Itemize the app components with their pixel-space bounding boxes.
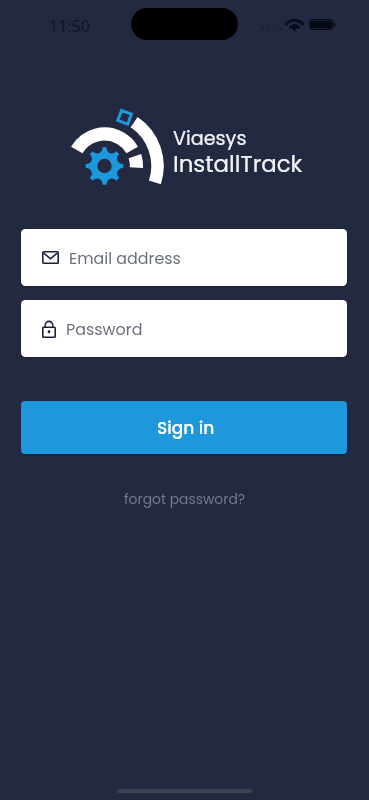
button[interactable]: Email address — [21, 229, 347, 286]
staticText: 11:50 — [49, 15, 90, 37]
other: Battery — [309, 19, 337, 30]
staticText: Viaesys — [173, 125, 247, 152]
button[interactable]: Sign in — [21, 401, 347, 454]
other: Wi-Fi — [286, 18, 303, 31]
staticText: InstallTrack — [173, 148, 303, 180]
staticText: Email address — [69, 247, 181, 269]
button[interactable]: Password — [21, 300, 347, 357]
staticText: Password — [66, 318, 143, 340]
staticText: Sign in — [157, 416, 215, 440]
button[interactable]: forgot password? — [124, 489, 246, 508]
